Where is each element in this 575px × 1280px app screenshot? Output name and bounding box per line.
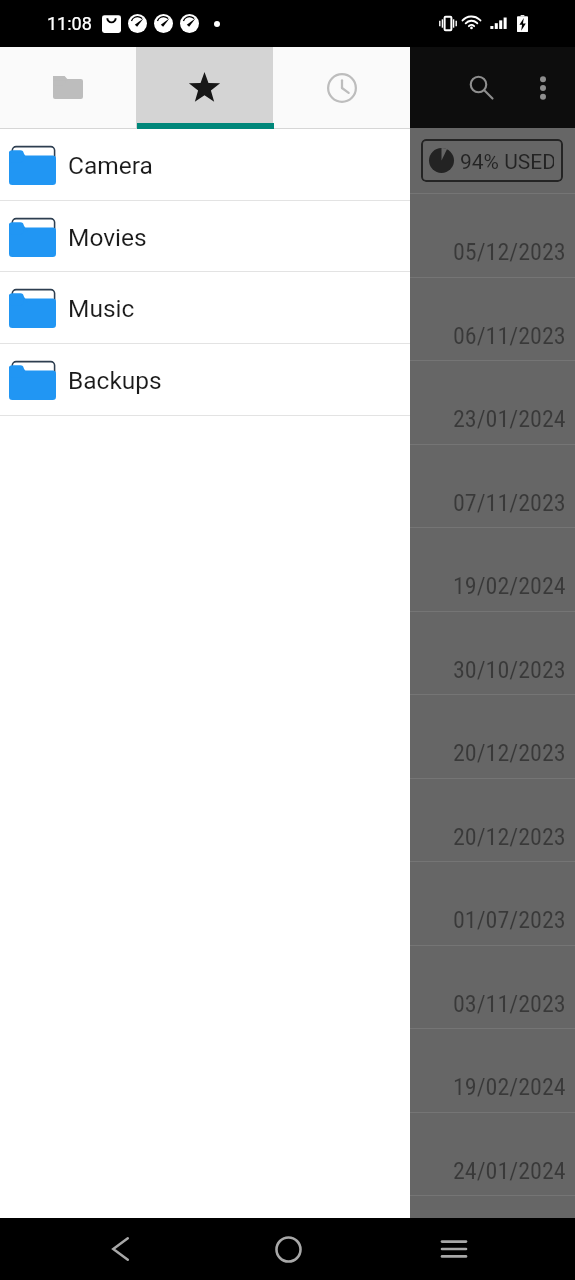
button[interactable]: 23/01/2024 bbox=[0, 360, 575, 444]
staticText: 11/05/2023 bbox=[453, 1240, 566, 1268]
button[interactable]: 06/11/2023 bbox=[0, 277, 575, 361]
staticText: 01/07/2023 bbox=[453, 906, 566, 934]
staticText: 30/10/2023 bbox=[453, 656, 566, 684]
button[interactable]: Backups bbox=[0, 344, 410, 416]
staticText: 19/02/2024 bbox=[453, 572, 566, 600]
button[interactable]: Favorites tab bbox=[136, 47, 273, 128]
button[interactable]: 20/12/2023 bbox=[0, 778, 575, 862]
staticText: Backups bbox=[68, 366, 162, 395]
button[interactable]: Recent tab bbox=[273, 47, 410, 128]
button[interactable]: 20/12/2023 bbox=[0, 694, 575, 778]
staticText: 11:08 bbox=[47, 13, 92, 34]
button[interactable]: Back bbox=[88, 1218, 152, 1280]
button[interactable]: 19/02/2024 bbox=[0, 1028, 575, 1112]
staticText: 19/02/2024 bbox=[453, 1073, 566, 1101]
button[interactable]: 94% USED bbox=[421, 139, 563, 182]
button[interactable]: 07/11/2023 bbox=[0, 444, 575, 528]
staticText: 05/12/2023 bbox=[453, 238, 566, 266]
button[interactable]: More options bbox=[512, 47, 574, 128]
button[interactable]: 19/02/2024 bbox=[0, 527, 575, 611]
staticText: 03/11/2023 bbox=[453, 990, 566, 1018]
button[interactable]: 11/05/2023 bbox=[0, 1195, 575, 1279]
button[interactable]: Recents bbox=[422, 1218, 486, 1280]
button[interactable]: Home bbox=[256, 1218, 320, 1280]
button[interactable]: 30/10/2023 bbox=[0, 611, 575, 695]
staticText: 23/01/2024 bbox=[453, 405, 566, 433]
staticText: 20/12/2023 bbox=[453, 739, 566, 767]
button[interactable]: Camera bbox=[0, 129, 410, 201]
button[interactable]: Search bbox=[450, 47, 512, 128]
button[interactable]: Folders tab bbox=[0, 47, 136, 128]
button[interactable]: 05/12/2023 bbox=[0, 193, 575, 277]
staticText: Camera bbox=[68, 151, 153, 180]
staticText: 07/11/2023 bbox=[453, 489, 566, 517]
button[interactable]: 03/11/2023 bbox=[0, 945, 575, 1029]
button[interactable]: 01/07/2023 bbox=[0, 861, 575, 945]
button[interactable]: Movies bbox=[0, 201, 410, 273]
button[interactable]: Music bbox=[0, 272, 410, 344]
staticText: 24/01/2024 bbox=[453, 1157, 566, 1185]
staticText: 20/12/2023 bbox=[453, 823, 566, 851]
button[interactable]: 24/01/2024 bbox=[0, 1112, 575, 1196]
staticText: Music bbox=[68, 294, 135, 323]
staticText: Movies bbox=[68, 223, 147, 252]
staticText: 06/11/2023 bbox=[453, 322, 566, 350]
staticText: 94% USED bbox=[460, 150, 554, 175]
